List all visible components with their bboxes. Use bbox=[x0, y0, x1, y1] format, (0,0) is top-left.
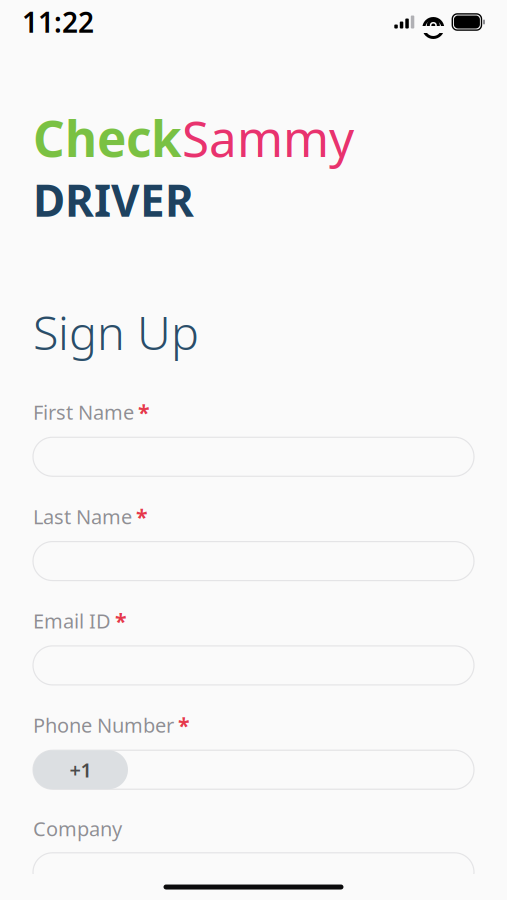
button[interactable] bbox=[33, 542, 474, 581]
staticText: Check bbox=[33, 105, 182, 170]
button[interactable]: +1 bbox=[33, 750, 474, 789]
staticText: * bbox=[178, 711, 190, 739]
staticText: First Name bbox=[33, 399, 134, 425]
staticText: Last Name bbox=[33, 503, 132, 530]
staticText: * bbox=[136, 502, 148, 530]
staticText: 11:22 bbox=[22, 3, 94, 41]
staticText: DRIVER bbox=[33, 170, 194, 229]
staticText: Sign Up bbox=[33, 301, 199, 363]
staticText: Sammy bbox=[182, 105, 354, 170]
button[interactable] bbox=[33, 437, 474, 476]
staticText: +1 bbox=[69, 756, 91, 783]
staticText: * bbox=[115, 607, 127, 635]
staticText: * bbox=[138, 398, 150, 426]
staticText: Company bbox=[33, 815, 122, 842]
staticText: Email ID bbox=[33, 607, 111, 634]
staticText: Phone Number bbox=[33, 712, 174, 738]
button[interactable] bbox=[33, 646, 474, 685]
button[interactable] bbox=[33, 853, 474, 892]
